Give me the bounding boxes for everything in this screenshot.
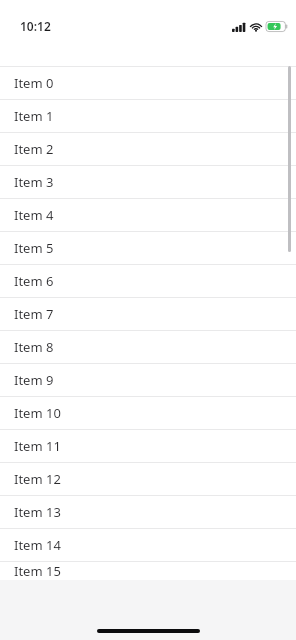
button[interactable]: Item 8 [0, 331, 296, 363]
button[interactable]: Item 0 [0, 67, 296, 99]
staticText: Item 4 [14, 206, 54, 224]
button[interactable]: Item 7 [0, 298, 296, 330]
button[interactable]: Item 5 [0, 232, 296, 264]
staticText: 10:12 [20, 18, 51, 34]
button[interactable]: Item 10 [0, 397, 296, 429]
button[interactable]: Item 12 [0, 463, 296, 495]
staticText: Item 13 [14, 503, 61, 521]
staticText: Item 14 [14, 536, 61, 554]
button[interactable]: Item 11 [0, 430, 296, 462]
staticText: Item 0 [14, 74, 54, 92]
staticText: Item 6 [14, 272, 54, 290]
button[interactable]: Item 2 [0, 133, 296, 165]
staticText: Item 11 [14, 437, 61, 455]
button[interactable]: Item 9 [0, 364, 296, 396]
button[interactable]: Item 15 [0, 562, 296, 580]
staticText: Item 1 [14, 107, 54, 125]
staticText: Item 3 [14, 173, 54, 191]
staticText: Item 12 [14, 470, 61, 488]
staticText: Item 15 [14, 562, 61, 580]
staticText: Item 2 [14, 140, 54, 158]
button[interactable]: Item 1 [0, 100, 296, 132]
button[interactable]: Item 14 [0, 529, 296, 561]
staticText: Item 5 [14, 239, 54, 257]
button[interactable]: Item 13 [0, 496, 296, 528]
staticText: Item 10 [14, 404, 61, 422]
staticText: Item 8 [14, 338, 54, 356]
button[interactable]: Item 6 [0, 265, 296, 297]
button[interactable]: Item 4 [0, 199, 296, 231]
other: Home indicator [97, 629, 200, 633]
button[interactable]: Item 3 [0, 166, 296, 198]
staticText: Item 7 [14, 305, 54, 323]
staticText: Item 9 [14, 371, 54, 389]
